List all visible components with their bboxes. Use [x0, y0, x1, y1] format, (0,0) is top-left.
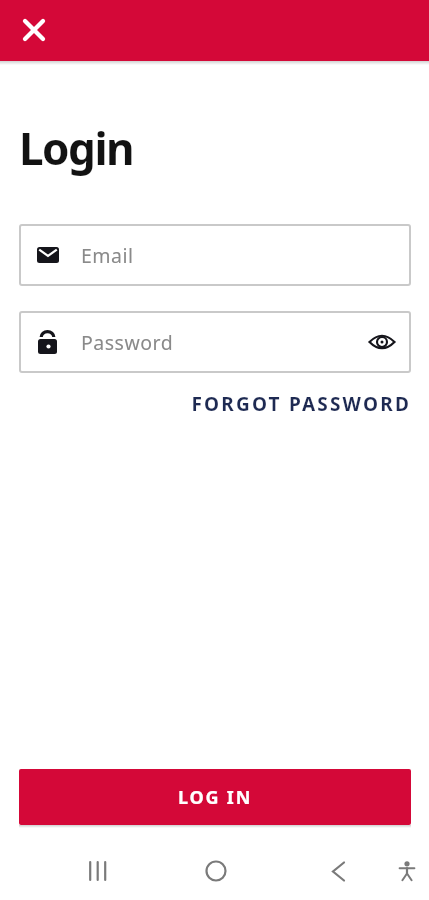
- button[interactable]: [359, 319, 405, 365]
- button[interactable]: [10, 6, 58, 54]
- button[interactable]: [194, 849, 238, 893]
- button[interactable]: [316, 849, 360, 893]
- staticText: Email: [81, 242, 134, 269]
- staticText: LOG IN: [178, 785, 253, 810]
- button[interactable]: [385, 849, 429, 893]
- button[interactable]: LOG IN: [19, 769, 411, 825]
- button[interactable]: Password: [19, 311, 411, 373]
- button[interactable]: FORGOT PASSWORD: [189, 388, 411, 420]
- staticText: Password: [81, 329, 174, 356]
- button[interactable]: Email: [19, 224, 411, 286]
- staticText: Login: [19, 118, 134, 178]
- button[interactable]: [76, 849, 120, 893]
- staticText: FORGOT PASSWORD: [191, 391, 411, 417]
